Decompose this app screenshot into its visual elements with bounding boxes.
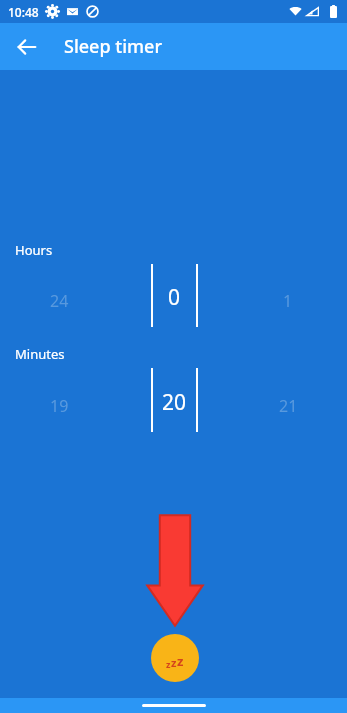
button[interactable]: 0 (153, 282, 196, 312)
staticText: 1 (283, 290, 293, 312)
button[interactable]: 1 (259, 288, 317, 314)
button[interactable]: 21 (259, 393, 317, 419)
staticText: 24 (50, 290, 69, 312)
button[interactable]: Start sleep timer (151, 634, 199, 682)
button[interactable]: Back (7, 27, 47, 67)
staticText: z (166, 658, 171, 670)
button[interactable]: 24 (30, 288, 88, 314)
staticText: Sleep timer (64, 34, 163, 59)
staticText: z (171, 655, 177, 670)
staticText: 21 (279, 395, 298, 417)
staticText: Hours (15, 241, 53, 259)
button[interactable]: 19 (30, 393, 88, 419)
staticText: Minutes (15, 345, 65, 363)
button[interactable]: 20 (153, 387, 196, 417)
staticText: 10:48 (8, 4, 39, 20)
staticText: 20 (162, 388, 187, 417)
staticText: 0 (168, 283, 181, 312)
staticText: z (177, 652, 184, 670)
staticText: 19 (50, 395, 69, 417)
